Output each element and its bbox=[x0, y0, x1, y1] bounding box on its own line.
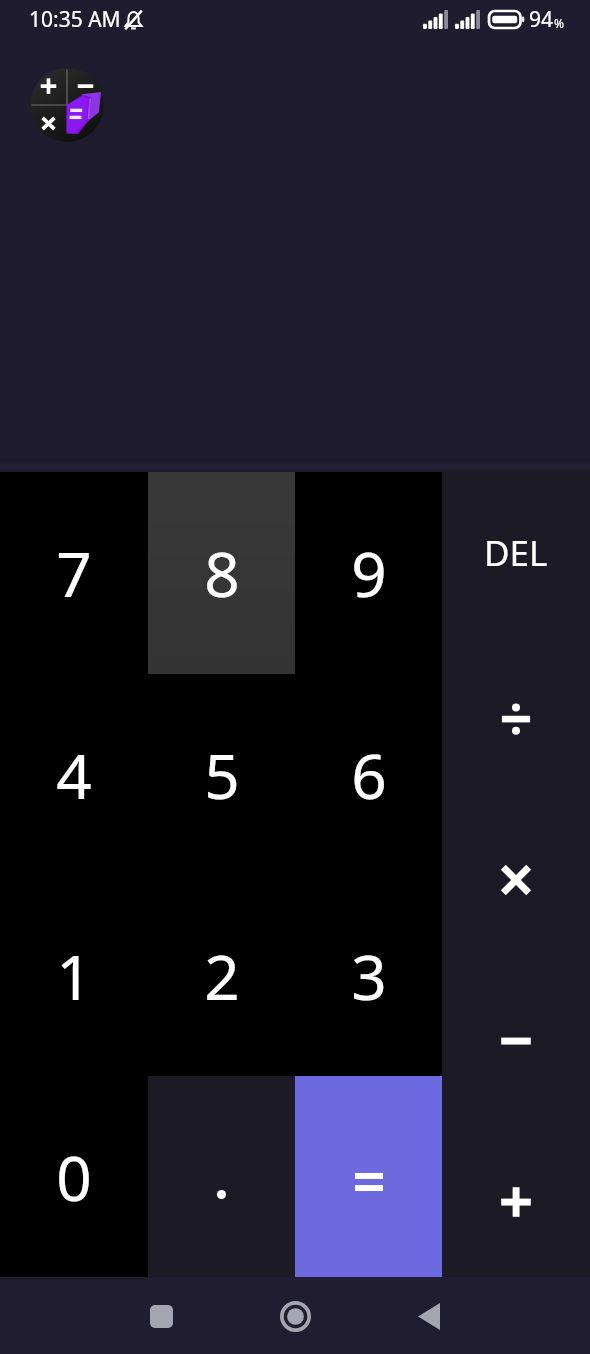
staticText: 1 bbox=[56, 934, 92, 1018]
button[interactable]: Back bbox=[394, 1281, 464, 1351]
button[interactable]: 7 bbox=[0, 472, 148, 674]
button[interactable]: 8 bbox=[148, 472, 295, 674]
button[interactable]: 6 bbox=[295, 674, 442, 875]
staticText: 10:35 AM bbox=[29, 5, 121, 34]
button[interactable]: plus bbox=[442, 1116, 590, 1277]
button[interactable]: Equals bbox=[295, 1076, 442, 1277]
staticText: 94 bbox=[529, 5, 554, 34]
button[interactable]: Home bbox=[260, 1281, 330, 1351]
button[interactable]: divide bbox=[442, 633, 590, 794]
button[interactable]: 9 bbox=[295, 472, 442, 674]
staticText: 3 bbox=[351, 934, 387, 1018]
staticText: 7 bbox=[56, 531, 92, 615]
button[interactable]: Calculator bbox=[30, 68, 104, 142]
staticText: 9 bbox=[351, 531, 387, 615]
button[interactable]: multiply bbox=[442, 794, 590, 955]
staticText: DEL bbox=[484, 529, 548, 577]
button[interactable]: minus bbox=[442, 955, 590, 1116]
button[interactable]: Decimal point bbox=[148, 1076, 295, 1277]
button[interactable]: 4 bbox=[0, 674, 148, 875]
button[interactable]: DEL bbox=[442, 472, 590, 633]
staticText: 0 bbox=[56, 1135, 92, 1219]
staticText: 8 bbox=[204, 531, 240, 615]
button[interactable]: 0 bbox=[0, 1076, 148, 1277]
staticText: 6 bbox=[351, 733, 387, 817]
staticText: 4 bbox=[56, 733, 92, 817]
staticText: 2 bbox=[204, 934, 240, 1018]
staticText: % bbox=[554, 15, 564, 31]
button[interactable]: 5 bbox=[148, 674, 295, 875]
button[interactable]: 1 bbox=[0, 875, 148, 1076]
button[interactable]: Recent apps bbox=[126, 1281, 196, 1351]
staticText: 5 bbox=[204, 733, 240, 817]
button[interactable]: 2 bbox=[148, 875, 295, 1076]
button[interactable]: 3 bbox=[295, 875, 442, 1076]
